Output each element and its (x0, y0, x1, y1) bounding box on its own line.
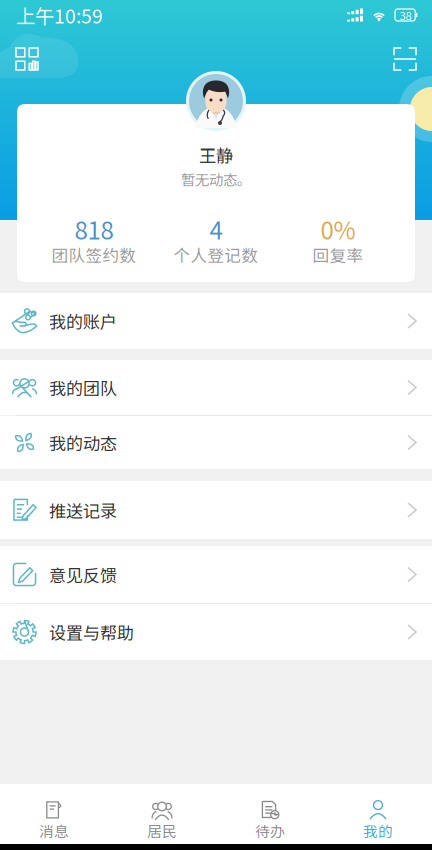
button[interactable]: 我的团队 (0, 360, 432, 415)
button[interactable]: 意见反馈 (0, 546, 432, 603)
staticText: 我的团队 (49, 375, 117, 400)
button[interactable]: 我的账户 (0, 293, 432, 349)
staticText: 设置与帮助 (49, 620, 134, 644)
staticText: 上午10:59 (16, 1, 103, 29)
button[interactable]: 待办 (216, 784, 324, 844)
staticText: 0% (320, 212, 355, 246)
staticText: 38 (399, 7, 411, 23)
staticText: 消息 (39, 820, 69, 841)
staticText: 暂无动态。 (181, 169, 251, 189)
staticText: 推送记录 (49, 498, 117, 522)
button[interactable]: 设置与帮助 (0, 604, 432, 660)
button[interactable]: 我的动态 (0, 416, 432, 469)
staticText: 团队签约数 (51, 242, 136, 266)
staticText: 个人登记数 (173, 242, 258, 266)
button[interactable]: 扫一扫 (6, 38, 48, 80)
staticText: 818 (74, 212, 113, 246)
staticText: 4 (209, 212, 222, 246)
button[interactable]: 我的 (324, 784, 432, 844)
staticText: 意见反馈 (49, 562, 117, 587)
button[interactable]: 居民 (108, 784, 216, 844)
staticText: 居民 (147, 820, 177, 841)
staticText: 回复率 (312, 242, 363, 266)
staticText: 我的动态 (49, 430, 117, 455)
button[interactable]: 扫描 (384, 38, 426, 80)
staticText: 我的账户 (49, 309, 117, 333)
staticText: 待办 (255, 820, 285, 841)
button[interactable]: 消息 (0, 784, 108, 844)
button[interactable]: 推送记录 (0, 481, 432, 539)
staticText: 我的 (363, 820, 393, 841)
staticText: 王静 (199, 142, 233, 168)
